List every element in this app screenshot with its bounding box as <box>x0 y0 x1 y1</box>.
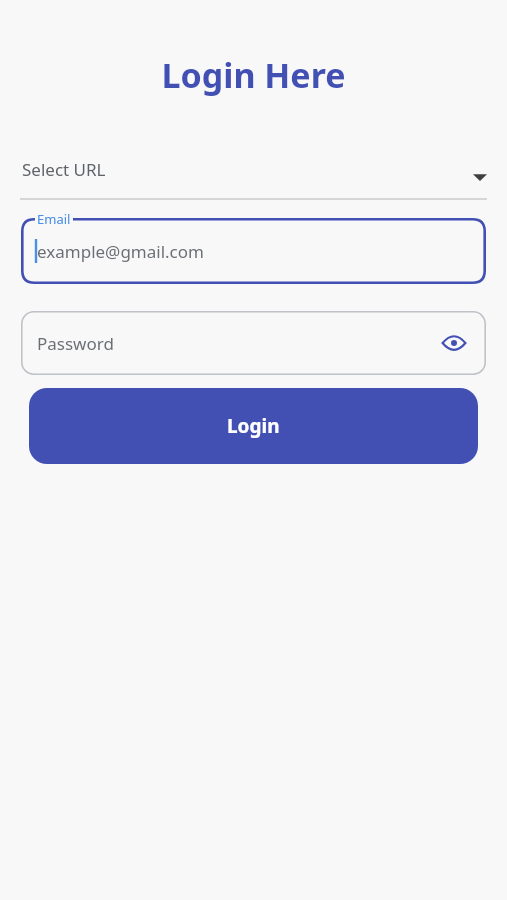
button[interactable]: Password <box>37 311 470 375</box>
staticText: Login Here <box>0 52 507 98</box>
button[interactable]: Select URL <box>20 146 487 200</box>
button[interactable]: example@gmail.com <box>35 218 472 284</box>
staticText: Email <box>37 210 71 228</box>
button[interactable]: Show password <box>438 327 470 359</box>
staticText: example@gmail.com <box>37 240 204 263</box>
staticText: Select URL <box>22 158 106 181</box>
button[interactable]: Login <box>29 388 478 464</box>
staticText: Login <box>227 413 280 439</box>
staticText: Password <box>37 332 114 355</box>
